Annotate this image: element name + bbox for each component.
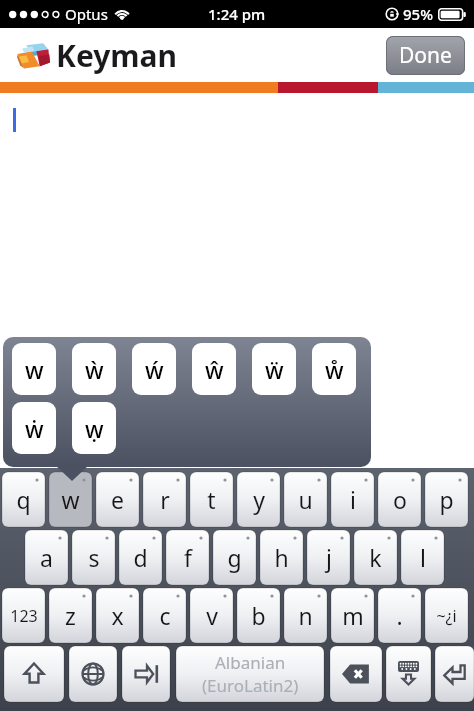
button[interactable]: ẃ [132, 343, 176, 395]
staticText: 123 [10, 605, 38, 627]
staticText: ẉ [85, 413, 104, 444]
button[interactable]: Shift [4, 646, 64, 702]
button[interactable]: Tab [122, 646, 170, 702]
staticText: c [159, 600, 171, 631]
staticText: 95% [403, 4, 433, 24]
staticText: . [396, 600, 403, 631]
button[interactable]: y [237, 472, 280, 527]
staticText: m [342, 600, 364, 631]
button[interactable]: Backspace [330, 646, 382, 702]
staticText: x [111, 600, 124, 631]
button[interactable]: v [190, 588, 233, 643]
button[interactable]: a [25, 530, 68, 585]
staticText: h [274, 542, 289, 573]
button[interactable]: ẇ [12, 402, 56, 454]
button[interactable]: i [331, 472, 374, 527]
button[interactable]: n [284, 588, 327, 643]
button[interactable]: q [2, 472, 45, 527]
staticText: p [439, 484, 454, 515]
button[interactable]: u [284, 472, 327, 527]
button[interactable]: b [237, 588, 280, 643]
button[interactable]: Enter [435, 646, 474, 702]
staticText: w [25, 354, 44, 385]
button[interactable]: w [49, 472, 92, 527]
button[interactable]: c [143, 588, 186, 643]
button[interactable]: d [119, 530, 162, 585]
button[interactable]: h [260, 530, 303, 585]
staticText: n [298, 600, 313, 631]
staticText: (EuroLatin2) [202, 674, 299, 697]
button[interactable]: e [96, 472, 139, 527]
staticText: z [65, 600, 76, 631]
staticText: ẘ [325, 354, 344, 385]
button[interactable]: Albanian [176, 646, 324, 702]
button[interactable]: 123 [2, 588, 45, 643]
button[interactable]: ẘ [312, 343, 356, 395]
staticText: s [88, 542, 100, 573]
staticText: a [40, 542, 53, 573]
button[interactable]: Keyman [16, 35, 178, 76]
staticText: l [420, 542, 426, 573]
button[interactable]: x [96, 588, 139, 643]
staticText: d [133, 542, 148, 573]
button[interactable]: t [190, 472, 233, 527]
button[interactable]: ẁ [72, 343, 116, 395]
button[interactable]: w [12, 343, 56, 395]
button[interactable]: ẅ [252, 343, 296, 395]
button[interactable]: r [143, 472, 186, 527]
staticText: Keyman [56, 35, 178, 76]
staticText: t [207, 484, 216, 515]
staticText: w [61, 484, 80, 515]
staticText: q [16, 484, 31, 515]
staticText: r [160, 484, 170, 515]
button[interactable]: Change language [69, 646, 117, 702]
button[interactable]: g [213, 530, 256, 585]
staticText: o [393, 484, 407, 515]
staticText: u [298, 484, 313, 515]
staticText: b [251, 600, 266, 631]
button[interactable]: m [331, 588, 374, 643]
staticText: y [253, 484, 265, 515]
button[interactable]: s [72, 530, 115, 585]
button[interactable]: f [166, 530, 209, 585]
staticText: i [350, 484, 356, 515]
staticText: Albanian [215, 651, 286, 674]
staticText: ŵ [205, 354, 224, 385]
button[interactable]: Done [386, 36, 465, 75]
staticText: f [184, 542, 192, 573]
button[interactable]: j [307, 530, 350, 585]
staticText: ẃ [145, 354, 164, 385]
staticText: j [326, 542, 332, 573]
button[interactable]: ~¿i [425, 588, 468, 643]
staticText: e [111, 484, 124, 515]
staticText: k [369, 542, 382, 573]
button[interactable]: z [49, 588, 92, 643]
staticText: ~¿i [436, 605, 457, 627]
button[interactable]: ẉ [72, 402, 116, 454]
button[interactable]: p [425, 472, 468, 527]
button[interactable]: k [354, 530, 397, 585]
staticText: ẅ [265, 354, 284, 385]
staticText: ẇ [25, 413, 44, 444]
staticText: g [227, 542, 242, 573]
staticText: Done [399, 41, 452, 70]
button[interactable]: Hide keyboard [386, 646, 431, 702]
staticText: ẁ [85, 354, 104, 385]
button[interactable]: . [378, 588, 421, 643]
button[interactable]: l [401, 530, 444, 585]
staticText: 1:24 pm [208, 4, 266, 24]
button[interactable]: o [378, 472, 421, 527]
staticText: v [206, 600, 218, 631]
button[interactable]: ŵ [192, 343, 236, 395]
staticText: Optus [65, 4, 108, 24]
